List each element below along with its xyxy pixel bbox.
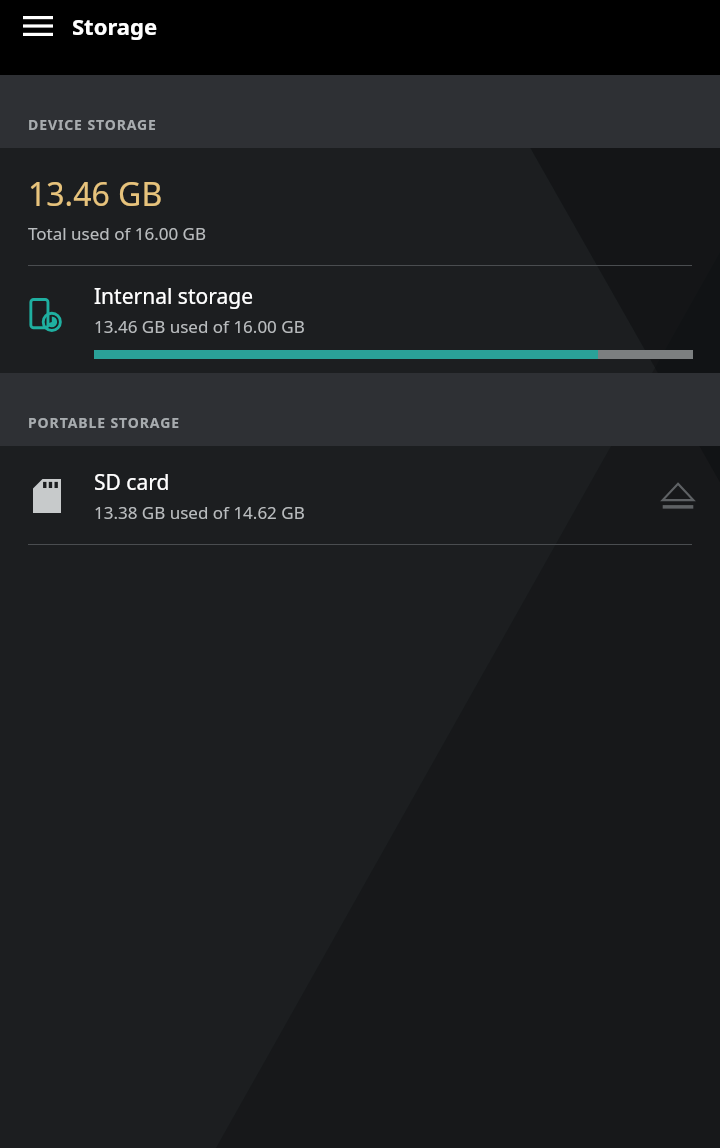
staticText: SD card <box>94 468 170 497</box>
staticText: DEVICE STORAGE <box>28 115 157 134</box>
staticText: 13.46 GB used of 16.00 GB <box>94 315 305 338</box>
button[interactable]: SD card <box>0 446 720 544</box>
button[interactable]: 13.46 GB <box>0 148 720 255</box>
staticText: Storage <box>72 11 158 41</box>
button[interactable]: Open navigation menu <box>12 0 64 52</box>
staticText: Internal storage <box>94 282 253 311</box>
staticText: 13.46 GB <box>28 172 163 216</box>
button[interactable]: Internal storage <box>0 266 720 373</box>
staticText: 13.38 GB used of 14.62 GB <box>94 501 305 524</box>
staticText: PORTABLE STORAGE <box>28 413 180 432</box>
button[interactable]: Eject SD card <box>644 462 712 530</box>
staticText: Total used of 16.00 GB <box>28 222 206 245</box>
